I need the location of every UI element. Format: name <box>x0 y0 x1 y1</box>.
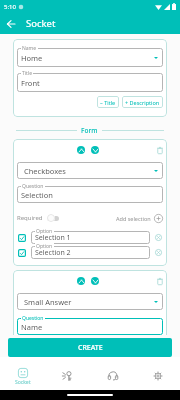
button[interactable]: Checkbox <box>17 233 26 242</box>
staticText: CREATE <box>78 343 103 353</box>
staticText: Question <box>22 315 44 321</box>
staticText: – Title <box>100 99 116 106</box>
button[interactable]: – Title <box>97 96 119 108</box>
staticText: Socket <box>26 17 56 30</box>
staticText: Home <box>21 53 43 63</box>
staticText: Option <box>36 243 53 249</box>
button[interactable]: Remove option <box>154 248 163 257</box>
staticText: Selection 1 <box>35 233 71 243</box>
staticText: 5:10 <box>4 3 16 11</box>
staticText: Checkboxes <box>24 166 66 176</box>
button[interactable]: Delete <box>154 145 165 156</box>
button[interactable]: Add selection <box>116 214 163 223</box>
button[interactable]: Navigation item <box>135 357 180 390</box>
button[interactable]: Navigation item <box>45 357 90 390</box>
staticText: Socket <box>15 379 31 386</box>
button[interactable]: CREATE <box>8 338 172 357</box>
button[interactable]: Back <box>0 13 21 34</box>
staticText: Small Answer <box>24 297 72 307</box>
staticText: Required <box>17 214 43 222</box>
staticText: Selection <box>21 190 53 200</box>
staticText: Front <box>21 78 40 88</box>
staticText: Option <box>36 228 53 234</box>
staticText: Selection 2 <box>35 248 71 258</box>
button[interactable]: Required <box>17 214 59 222</box>
button[interactable]: Remove option <box>154 233 163 242</box>
button[interactable]: Delete <box>154 276 165 287</box>
staticText: Title <box>22 70 32 76</box>
button[interactable]: Move down <box>91 146 99 154</box>
staticText: Add selection <box>116 215 151 222</box>
button[interactable]: Move up <box>77 146 85 154</box>
button[interactable]: Navigation item <box>90 357 135 390</box>
button[interactable]: Checkbox <box>17 248 26 257</box>
button[interactable]: Move down <box>91 277 99 285</box>
staticText: Form <box>81 126 98 135</box>
staticText: Name <box>21 322 43 332</box>
staticText: Name <box>22 45 37 51</box>
button[interactable]: + Description <box>122 96 163 108</box>
staticText: + Description <box>125 99 160 106</box>
button[interactable]: Socket <box>0 357 45 390</box>
staticText: Question <box>22 183 44 189</box>
button[interactable]: Move up <box>77 277 85 285</box>
